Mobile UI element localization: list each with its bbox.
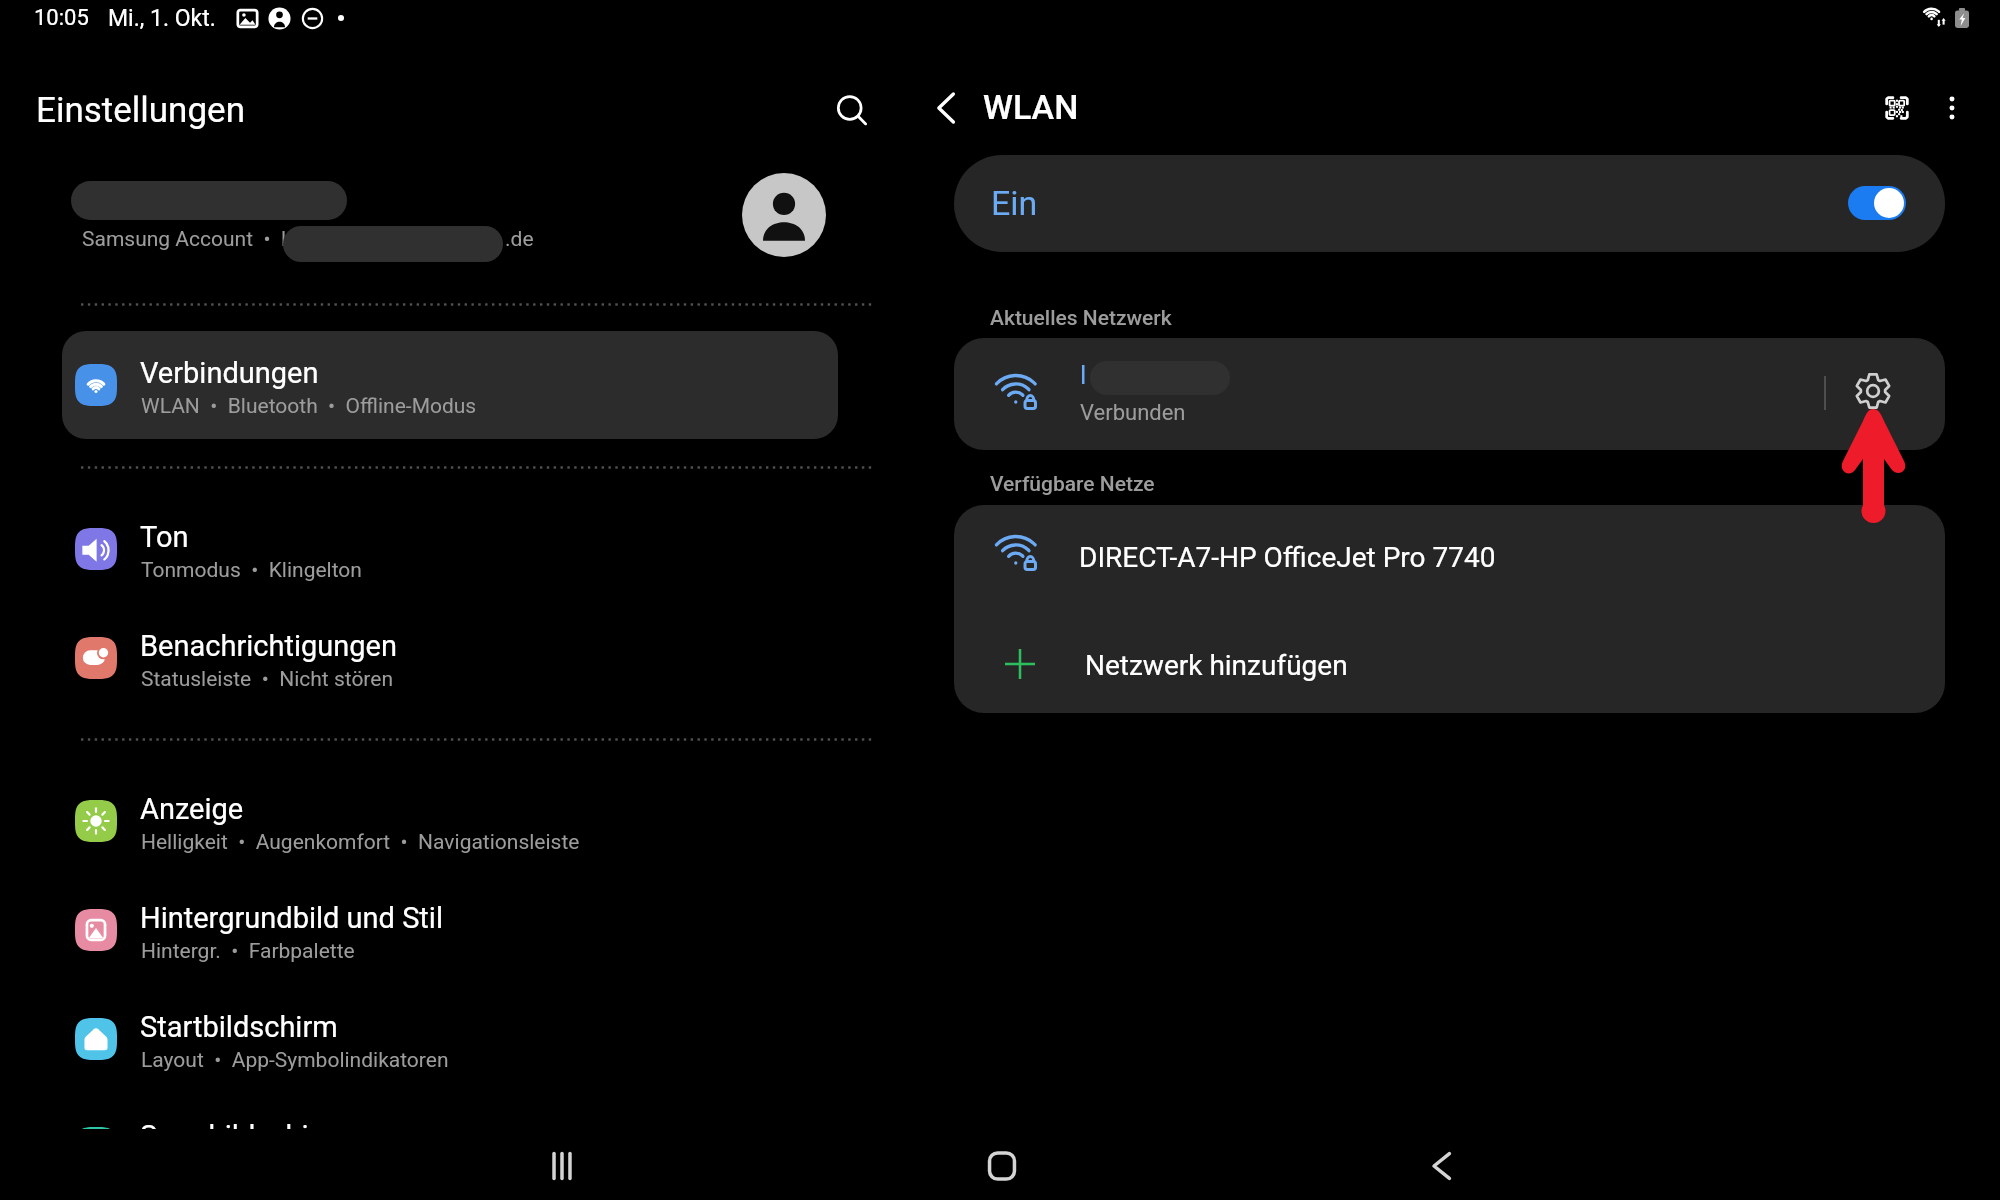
button[interactable]: l [954, 338, 1945, 450]
staticText: Samsung Account • l [82, 227, 287, 252]
staticText: Layout • App-Symbolindikatoren [141, 1048, 449, 1073]
staticText: Verbindungen [140, 356, 319, 390]
button[interactable]: Anzeige [62, 767, 838, 875]
button[interactable]: Sperrbildschirm [62, 1094, 838, 1129]
button[interactable]: Weitere Optionen [1921, 77, 1983, 139]
button[interactable]: Ein [954, 155, 1945, 252]
staticText: 10:05 [34, 5, 89, 31]
staticText: DIRECT-A7-HP OfficeJet Pro 7740 [1079, 541, 1496, 574]
button[interactable]: Zurück [1391, 1116, 1491, 1200]
staticText: Anzeige [140, 792, 244, 826]
button[interactable]: Netzwerk hinzufügen [954, 609, 1945, 713]
button[interactable]: Benachrichtigungen [62, 604, 838, 712]
button[interactable]: Hintergrundbild und Stil [62, 876, 838, 984]
staticText: Mi., 1. Okt. [108, 5, 216, 32]
staticText: Aktuelles Netzwerk [990, 306, 1172, 331]
button[interactable]: Netzwerkeinstellungen [1835, 353, 1911, 429]
button[interactable]: Zurück [915, 76, 978, 139]
button[interactable]: Verbindungen [62, 331, 838, 439]
staticText: Startbildschirm [140, 1010, 338, 1044]
button[interactable]: Samsung Account • l [62, 165, 838, 275]
button[interactable]: Startbildschirm [62, 985, 838, 1093]
staticText: Verfügbare Netze [990, 472, 1155, 497]
staticText: Netzwerk hinzufügen [1085, 649, 1348, 682]
staticText: Tonmodus • Klingelton [141, 558, 362, 583]
staticText: WLAN • Bluetooth • Offline-Modus [141, 394, 477, 419]
button[interactable]: Ton [62, 495, 838, 603]
staticText: Ton [140, 520, 189, 554]
staticText: l [1080, 360, 1087, 390]
staticText: Hintergrundbild und Stil [140, 901, 443, 935]
staticText: Einstellungen [36, 90, 245, 131]
staticText: WLAN [983, 87, 1079, 127]
button[interactable]: Startbildschirm [952, 1116, 1052, 1200]
button[interactable]: Samsung Account [742, 173, 826, 257]
staticText: Helligkeit • Augenkomfort • Navigationsl… [141, 830, 580, 855]
button[interactable]: DIRECT-A7-HP OfficeJet Pro 7740 [954, 505, 1945, 609]
staticText: Benachrichtigungen [140, 629, 397, 663]
button[interactable]: QR-Code scannen [1866, 77, 1928, 139]
button[interactable]: Suchen [818, 77, 886, 145]
button[interactable]: Letzte Apps [512, 1116, 612, 1200]
staticText: Hintergr. • Farbpalette [141, 939, 355, 964]
staticText: Sperrbildschirm [140, 1119, 344, 1129]
staticText: .de [505, 227, 534, 252]
staticText: Statusleiste • Nicht stören [141, 667, 394, 692]
staticText: Verbunden [1080, 400, 1186, 426]
staticText: Ein [991, 183, 1038, 223]
